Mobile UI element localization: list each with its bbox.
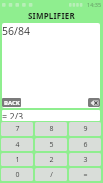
staticText: 9 [83, 124, 88, 134]
button[interactable]: / [35, 168, 67, 181]
button[interactable]: 5 [35, 138, 67, 151]
staticText: 56/84 [2, 24, 30, 38]
staticText: 4 [15, 140, 20, 150]
button[interactable]: BACK [2, 98, 21, 107]
staticText: 6 [83, 140, 88, 150]
staticText: SIMPLIFIER [28, 10, 75, 21]
button[interactable]: 7 [1, 122, 33, 136]
staticText: / [50, 170, 53, 180]
staticText: = [83, 170, 88, 180]
button[interactable]: = [69, 168, 101, 181]
staticText: = 2/3 [2, 110, 24, 119]
staticText: 14:35 [87, 1, 102, 8]
staticText: 5 [49, 140, 54, 150]
button[interactable]: 9 [69, 122, 101, 136]
button[interactable]: 8 [35, 122, 67, 136]
button[interactable]: 2 [35, 153, 67, 166]
button[interactable]: 3 [69, 153, 101, 166]
staticText: 1 [15, 155, 20, 165]
staticText: 8 [49, 124, 54, 134]
button[interactable]: 1 [1, 153, 33, 166]
staticText: 0 [15, 170, 20, 180]
staticText: BACK [4, 99, 20, 107]
button[interactable]: 0 [1, 168, 33, 181]
button[interactable]: 4 [1, 138, 33, 151]
button[interactable]: 6 [69, 138, 101, 151]
staticText: 2 [49, 155, 54, 165]
staticText: 3 [83, 155, 88, 165]
staticText: 7 [15, 124, 20, 134]
button[interactable]: Backspace [88, 98, 100, 107]
